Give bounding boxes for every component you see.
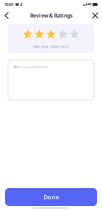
staticText: Rate your experience [33, 44, 69, 49]
staticText: Done [43, 193, 58, 201]
staticText: Write your experience [13, 64, 48, 69]
staticText: 10:09 [4, 2, 13, 7]
staticText: Review & Ratings [30, 12, 73, 19]
button[interactable]: Close [86, 9, 98, 21]
button[interactable]: Back [4, 9, 17, 21]
button[interactable]: Done [5, 188, 97, 206]
staticText: 4 [20, 2, 22, 7]
